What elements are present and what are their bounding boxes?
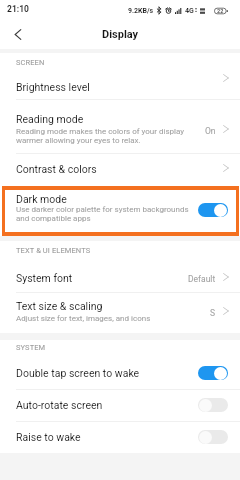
staticText: 21:10 (7, 4, 29, 14)
staticText: Use darker color palette for system back… (16, 205, 189, 223)
staticText: 22 (217, 8, 224, 14)
staticText: 4G (185, 7, 194, 15)
staticText: On (205, 126, 216, 136)
button[interactable]: Turn on (198, 430, 228, 444)
staticText: Reading mode (16, 113, 84, 125)
button[interactable]: System font (0, 262, 240, 292)
staticText: Reading mode makes the colors of your di… (16, 127, 185, 145)
staticText: Dark mode (16, 193, 67, 205)
button[interactable]: Auto-rotate screen (0, 390, 240, 421)
staticText: Brightness level (16, 81, 90, 93)
button[interactable]: Raise to wake (0, 422, 240, 453)
button[interactable]: Double tap screen to wake (0, 357, 240, 389)
staticText: SCREEN (16, 58, 45, 67)
staticText: Display (102, 28, 139, 41)
button[interactable]: Turn off (198, 366, 228, 380)
staticText: S (210, 308, 216, 318)
button[interactable]: Turn on (198, 398, 228, 412)
button[interactable]: Back (0, 20, 34, 49)
staticText: 9.2KB/s (128, 7, 154, 15)
staticText: Text size & scaling (16, 300, 103, 312)
staticText: Default (188, 274, 216, 284)
staticText: Contrast & colors (16, 163, 97, 175)
button[interactable]: Brightness level (0, 74, 240, 99)
button[interactable]: Reading mode (0, 100, 240, 153)
staticText: Raise to wake (16, 431, 81, 443)
staticText: TEXT & UI ELEMENTS (16, 246, 91, 255)
button[interactable]: Dark mode (5, 190, 236, 232)
staticText: Adjust size for text, images, and icons (16, 314, 151, 323)
button[interactable]: Turn off (198, 203, 228, 217)
button[interactable]: Contrast & colors (0, 154, 240, 186)
staticText: SYSTEM (16, 343, 46, 352)
staticText: System font (16, 272, 73, 284)
staticText: Auto-rotate screen (16, 399, 103, 411)
button[interactable]: Text size & scaling (0, 293, 240, 333)
staticText: Double tap screen to wake (16, 367, 140, 379)
